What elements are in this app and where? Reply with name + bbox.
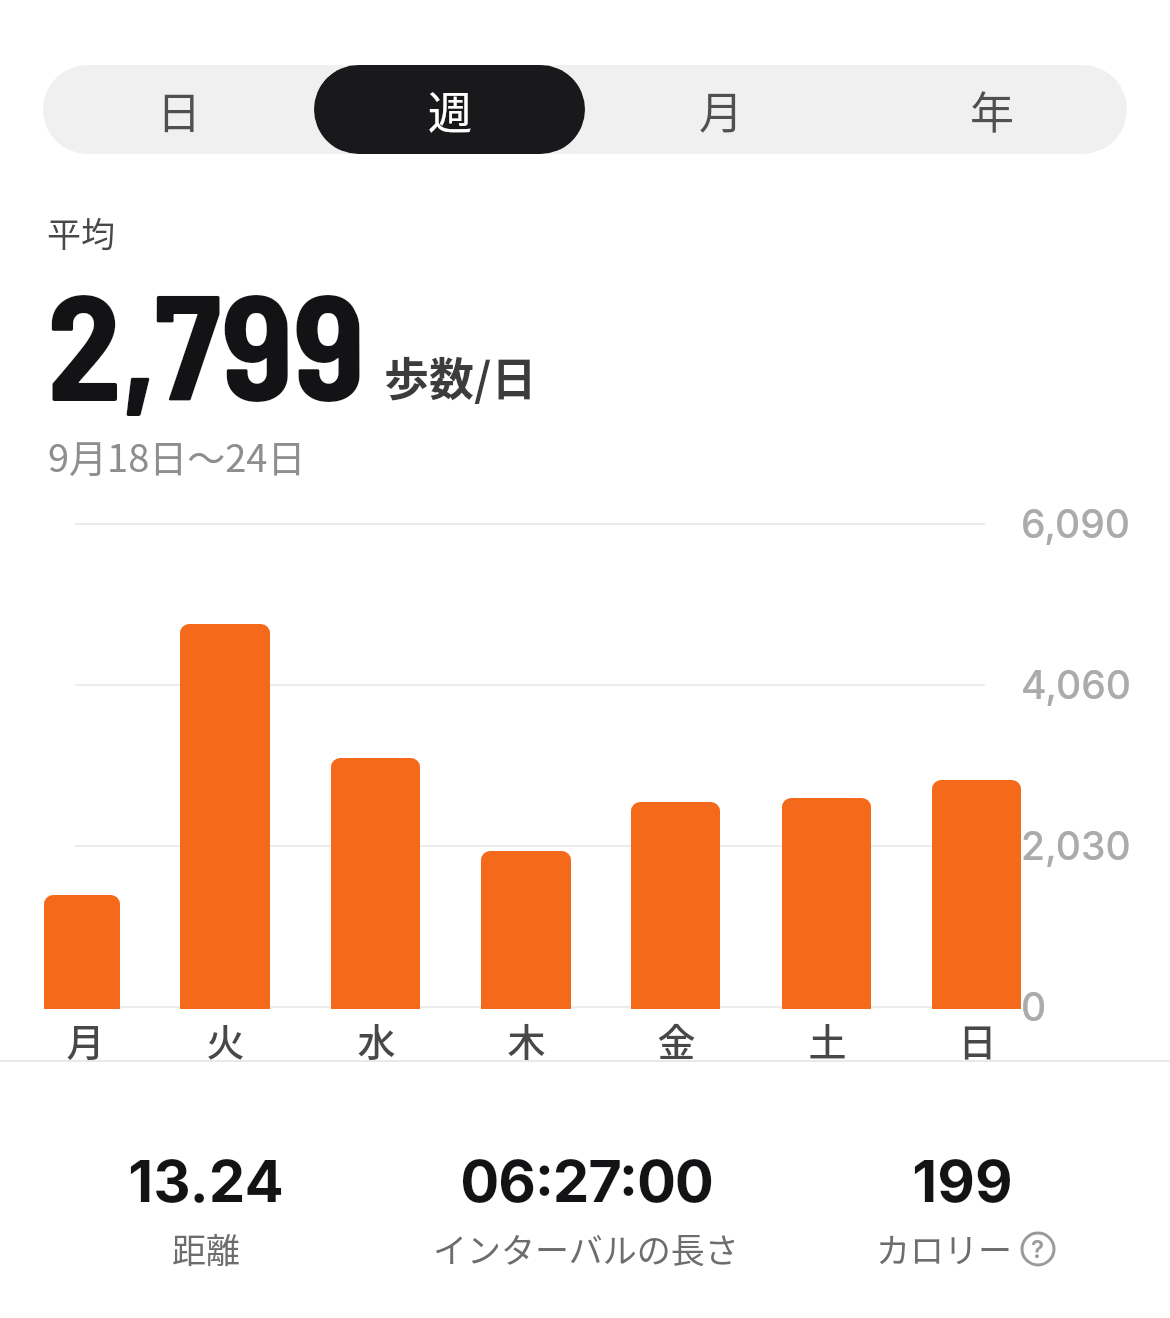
staticText: 月 — [66, 1012, 105, 1067]
staticText: 4,060 — [1021, 661, 1131, 708]
staticText: カロリー — [876, 1224, 1012, 1273]
staticText: 金 — [657, 1012, 696, 1067]
staticText: 日 — [157, 78, 201, 142]
staticText: 土 — [808, 1012, 847, 1067]
staticText: インターバルの長さ — [433, 1224, 739, 1273]
staticText: 木 — [507, 1012, 546, 1067]
staticText: 距離 — [172, 1224, 240, 1273]
staticText: 13.24 — [128, 1146, 284, 1216]
staticText: 06:27:00 — [460, 1146, 713, 1216]
staticText: 2,799 — [47, 252, 366, 431]
staticText: 199 — [912, 1146, 1013, 1216]
staticText: 火 — [206, 1012, 245, 1067]
button[interactable]: 年 — [856, 65, 1127, 154]
staticText: 歩数/日 — [384, 344, 537, 409]
button[interactable]: 月 — [585, 65, 856, 154]
button[interactable]: ? — [1020, 1231, 1056, 1267]
staticText: ? — [1031, 1235, 1045, 1264]
staticText: 水 — [357, 1012, 396, 1067]
staticText: 年 — [970, 78, 1014, 142]
staticText: 0 — [1021, 983, 1047, 1030]
staticText: 日 — [958, 1012, 997, 1067]
staticText: 9月18日〜24日 — [48, 428, 306, 483]
staticText: 週 — [428, 78, 472, 142]
staticText: 平均 — [47, 208, 115, 257]
button[interactable]: 週 — [314, 65, 585, 154]
button[interactable]: 日 — [43, 65, 314, 154]
staticText: 2,030 — [1021, 822, 1131, 869]
staticText: 6,090 — [1021, 500, 1131, 547]
staticText: 月 — [699, 78, 743, 142]
